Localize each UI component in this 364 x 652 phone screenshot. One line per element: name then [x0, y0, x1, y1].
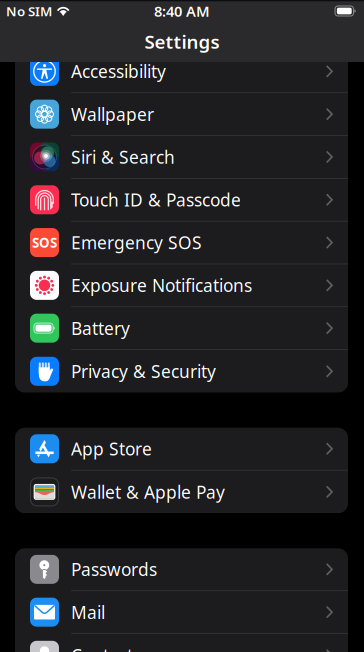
staticText: App Store: [71, 437, 152, 460]
button[interactable]: Accessibility: [15, 50, 348, 93]
button[interactable]: Battery: [15, 307, 348, 350]
button[interactable]: Wallet & Apple Pay: [15, 470, 348, 513]
button[interactable]: Touch ID & Passcode: [15, 179, 348, 221]
staticText: Siri & Search: [71, 145, 175, 168]
staticText: Contacts: [71, 644, 141, 652]
staticText: Emergency SOS: [71, 231, 202, 254]
staticText: No SIM: [6, 2, 52, 20]
staticText: Wallet & Apple Pay: [71, 480, 225, 503]
button[interactable]: Wallpaper: [15, 93, 348, 136]
button[interactable]: Passwords: [15, 548, 348, 591]
staticText: SOS: [32, 234, 57, 251]
staticText: Privacy & Security: [71, 360, 216, 383]
staticText: Wallpaper: [71, 103, 154, 126]
button[interactable]: Siri & Search: [15, 136, 348, 179]
button[interactable]: Contacts: [15, 634, 348, 652]
staticText: Exposure Notifications: [71, 274, 252, 297]
button[interactable]: Mail: [15, 591, 348, 634]
button[interactable]: Exposure Notifications: [15, 264, 348, 307]
button[interactable]: Privacy & Security: [15, 350, 348, 393]
staticText: Touch ID & Passcode: [71, 188, 241, 211]
staticText: 8:40 AM: [154, 1, 210, 21]
button[interactable]: App Store: [15, 428, 348, 470]
staticText: Passwords: [71, 558, 157, 581]
staticText: Battery: [71, 317, 130, 340]
staticText: Accessibility: [71, 60, 166, 83]
staticText: Settings: [144, 29, 219, 54]
button[interactable]: SOS: [15, 221, 348, 264]
staticText: Mail: [71, 601, 105, 624]
